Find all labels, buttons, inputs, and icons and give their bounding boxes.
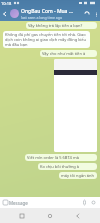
staticText: máy tôi ngắn ảnh [61, 173, 94, 178]
button[interactable]: Back [0, 9, 10, 19]
button[interactable]: Ko chịu bồi thường à [38, 163, 97, 170]
staticText: Message [9, 200, 80, 206]
button[interactable]: máy tôi ngắn ảnh [59, 172, 97, 179]
button[interactable]: Viết mín order là 5 6BT4 mà [25, 154, 97, 161]
staticText: Viết mín order là 5 6BT4 mà [27, 155, 79, 160]
button[interactable]: More options [92, 10, 100, 18]
button[interactable]: Recents [16, 210, 28, 222]
button[interactable]: Vậy không trả lập tiền a bạn? [26, 22, 97, 29]
button[interactable]: Home [44, 210, 56, 222]
staticText: Vậy không trả lập tiền a bạn? [28, 23, 83, 28]
staticText: Vậy cho như mất tiền à [42, 51, 86, 56]
button[interactable]: Vậy cho như mất tiền à [40, 50, 97, 57]
staticText: Ko chịu bồi thường à [40, 164, 80, 169]
button[interactable]: Camera [89, 198, 98, 207]
button[interactable]: Emoji [2, 199, 9, 206]
staticText: Không đủ phí gas chuyển tiền tới nhà. Gi… [5, 32, 88, 47]
button[interactable]: Attach [80, 198, 89, 207]
staticText: OngBau Com - Mua ... [21, 8, 73, 15]
staticText: last seen a long time ago [21, 15, 63, 20]
button[interactable]: Không đủ phí gas chuyển tiền tới nhà. Gi… [3, 31, 90, 48]
button[interactable]: Back [72, 210, 84, 222]
button[interactable]: Call [82, 9, 92, 19]
button[interactable] [54, 59, 97, 152]
staticText: 10:18 [1, 1, 12, 6]
